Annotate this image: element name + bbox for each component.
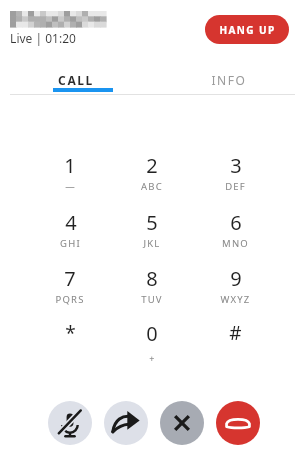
staticText: 0 bbox=[146, 320, 158, 347]
button[interactable]: HANG UP bbox=[205, 15, 289, 44]
staticText: 9 bbox=[230, 265, 242, 292]
staticText: MNO bbox=[222, 237, 249, 250]
staticText: 5 bbox=[146, 209, 158, 236]
button[interactable]: 4 bbox=[33, 209, 107, 259]
button[interactable]: 1 bbox=[33, 152, 107, 202]
staticText: + bbox=[149, 352, 156, 364]
button[interactable]: 3 bbox=[198, 152, 272, 202]
button[interactable]: CALL bbox=[0, 64, 152, 96]
button[interactable]: 5 bbox=[115, 209, 189, 259]
button[interactable]: Close bbox=[160, 401, 204, 445]
staticText: DEF bbox=[225, 180, 246, 193]
staticText: TUV bbox=[141, 293, 163, 306]
staticText: 7 bbox=[64, 265, 76, 292]
staticText: INFO bbox=[211, 72, 247, 88]
staticText: 2 bbox=[146, 152, 158, 179]
staticText: WXYZ bbox=[220, 293, 251, 306]
button[interactable]: # bbox=[198, 320, 272, 370]
button[interactable]: End call bbox=[216, 401, 260, 445]
button[interactable]: 0 bbox=[115, 320, 189, 370]
staticText: CALL bbox=[58, 72, 94, 88]
button[interactable]: Transfer call bbox=[104, 401, 148, 445]
staticText: 1 bbox=[64, 152, 76, 179]
staticText: 6 bbox=[230, 209, 242, 236]
staticText: 3 bbox=[230, 152, 242, 179]
staticText: JKL bbox=[143, 237, 161, 250]
button[interactable]: 7 bbox=[33, 265, 107, 315]
staticText: * bbox=[65, 320, 76, 346]
button[interactable]: INFO bbox=[152, 64, 305, 96]
button[interactable]: 9 bbox=[198, 265, 272, 315]
button[interactable]: 6 bbox=[198, 209, 272, 259]
staticText: GHI bbox=[60, 237, 81, 250]
button[interactable]: 2 bbox=[115, 152, 189, 202]
staticText: — bbox=[65, 180, 76, 193]
button[interactable]: * bbox=[33, 320, 107, 370]
staticText: ABC bbox=[141, 180, 163, 193]
staticText: PQRS bbox=[55, 293, 85, 306]
staticText: 4 bbox=[65, 209, 77, 236]
staticText: 8 bbox=[146, 265, 158, 292]
button[interactable]: Mute bbox=[48, 401, 92, 445]
staticText: # bbox=[229, 320, 242, 346]
staticText: HANG UP bbox=[219, 23, 276, 37]
button[interactable]: 8 bbox=[115, 265, 189, 315]
staticText: Live | 01:20 bbox=[10, 30, 76, 46]
